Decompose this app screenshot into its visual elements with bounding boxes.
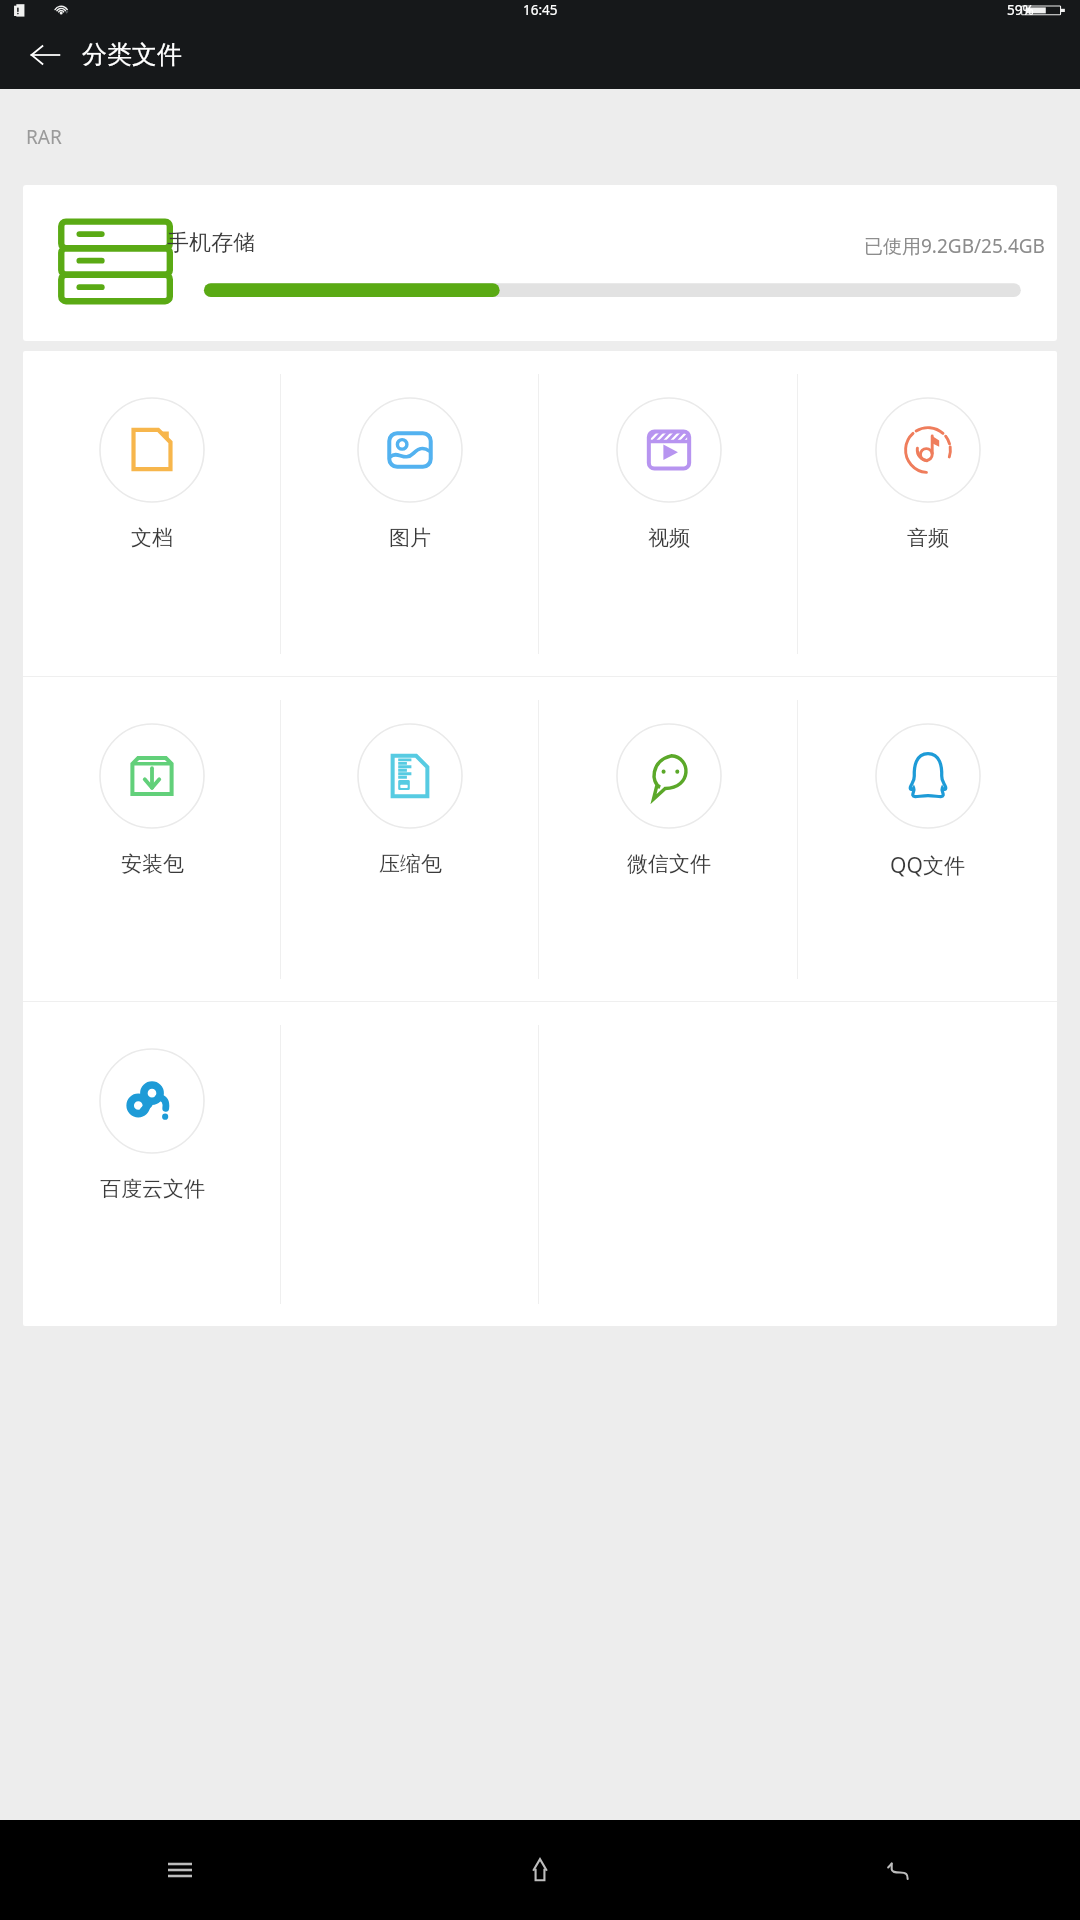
button[interactable]: 安装包 (23, 677, 281, 1001)
staticText: 图片 (389, 525, 431, 551)
staticText: 16:45 (523, 1, 558, 19)
button[interactable]: 图片 (281, 351, 539, 676)
staticText: QQ文件 (890, 851, 965, 880)
button[interactable]: Back (720, 1820, 1080, 1920)
staticText: 安装包 (121, 851, 184, 877)
staticText: 文档 (131, 525, 173, 551)
button[interactable]: 微信文件 (539, 677, 798, 1001)
staticText: 手机存储 (167, 229, 255, 257)
button[interactable]: Menu (0, 1820, 360, 1920)
button[interactable]: 手机存储 (23, 185, 1057, 341)
staticText: RAR (26, 124, 62, 150)
button[interactable]: Back (22, 32, 68, 78)
button[interactable]: 音频 (798, 351, 1057, 676)
button[interactable]: 压缩包 (281, 677, 539, 1001)
staticText: 音频 (907, 525, 949, 551)
button[interactable]: 文档 (23, 351, 281, 676)
staticText: 微信文件 (627, 851, 711, 877)
staticText: 压缩包 (379, 851, 442, 877)
button[interactable]: 百度云文件 (23, 1002, 281, 1326)
staticText: 59% (1007, 1, 1034, 19)
staticText: 视频 (648, 525, 690, 551)
staticText: 已使用9.2GB/25.4GB (864, 233, 1045, 259)
button[interactable]: Home (360, 1820, 720, 1920)
button[interactable]: 视频 (539, 351, 798, 676)
button[interactable]: QQ文件 (798, 677, 1057, 1001)
staticText: 分类文件 (82, 39, 182, 70)
staticText: 百度云文件 (100, 1176, 205, 1202)
